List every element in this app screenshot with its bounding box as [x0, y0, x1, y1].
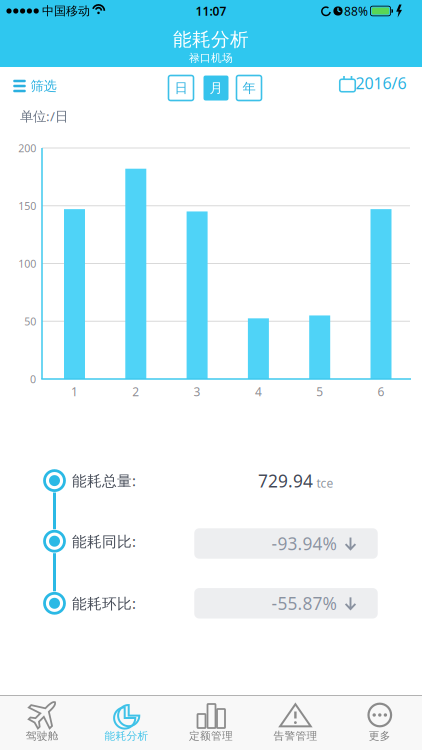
staticText: 日 — [174, 80, 187, 96]
button[interactable]: 2016/6 — [332, 65, 408, 103]
staticText: 能耗总量: — [72, 471, 136, 490]
staticText: 100 — [18, 256, 36, 271]
staticText: 禄口机场 — [189, 51, 233, 64]
staticText: 729.94 — [258, 469, 313, 492]
staticText: 50 — [24, 314, 36, 328]
staticText: 告警管理 — [273, 729, 317, 742]
staticText: 能耗环比: — [72, 594, 136, 613]
staticText: 2 — [132, 383, 139, 399]
staticText: 200 — [18, 141, 36, 155]
staticText: 150 — [18, 199, 36, 213]
staticText: tce — [316, 475, 333, 491]
staticText: 5 — [316, 383, 323, 399]
staticText: 能耗分析 — [105, 729, 149, 742]
staticText: 定额管理 — [189, 729, 233, 742]
button[interactable]: 告警管理 — [253, 695, 338, 750]
button[interactable]: 定额管理 — [169, 695, 253, 750]
button[interactable]: 更多 — [338, 695, 422, 750]
staticText: 中国移动 — [42, 4, 90, 18]
staticText: 4 — [255, 383, 262, 399]
staticText: -93.94% — [271, 532, 336, 555]
staticText: 2016/6 — [355, 72, 406, 94]
staticText: 3 — [194, 383, 201, 399]
staticText: 年 — [242, 80, 255, 96]
staticText: 能耗同比: — [72, 531, 136, 551]
button[interactable]: 年 — [236, 75, 261, 100]
staticText: 1 — [71, 383, 78, 399]
staticText: 0 — [30, 372, 36, 386]
button[interactable]: 能耗分析 — [84, 695, 169, 750]
button[interactable]: 月 — [203, 75, 228, 100]
staticText: 单位:/日 — [20, 107, 68, 125]
staticText: -55.87% — [271, 592, 336, 615]
staticText: 88% — [344, 3, 368, 19]
staticText: 能耗分析 — [173, 28, 249, 51]
button[interactable]: 筛选 — [0, 67, 70, 105]
button[interactable]: 驾驶舱 — [0, 695, 84, 750]
button[interactable]: 日 — [168, 75, 193, 100]
staticText: 筛选 — [30, 78, 56, 94]
staticText: 11:07 — [195, 3, 226, 19]
staticText: 6 — [377, 383, 384, 399]
staticText: 驾驶舱 — [26, 729, 59, 742]
staticText: 月 — [209, 80, 222, 96]
staticText: 更多 — [369, 729, 391, 742]
